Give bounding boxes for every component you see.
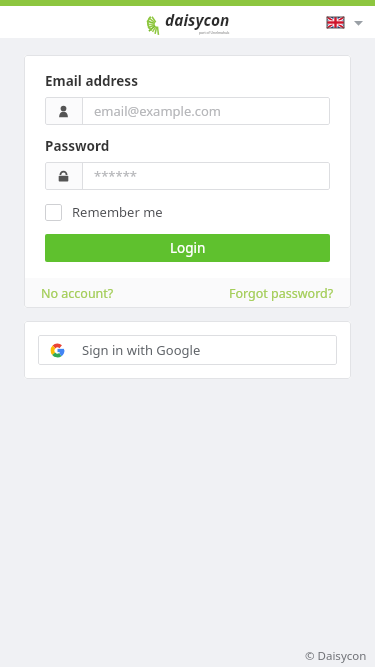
staticText: Login <box>170 239 206 257</box>
button[interactable]: ****** <box>45 162 330 190</box>
button[interactable]: email@example.com <box>45 97 330 125</box>
button[interactable]: Remember me <box>45 203 163 221</box>
button[interactable]: Login <box>45 234 330 262</box>
staticText: part of Unelmahub <box>199 30 230 35</box>
staticText: Remember me <box>72 203 163 221</box>
button[interactable]: Forgot password? <box>229 278 351 308</box>
button[interactable]: No account? <box>24 278 114 308</box>
staticText: email@example.com <box>94 102 221 120</box>
staticText: No account? <box>41 285 114 302</box>
staticText: Email address <box>45 72 138 90</box>
staticText: Sign in with Google <box>82 341 201 359</box>
button[interactable]: Select language <box>323 13 367 32</box>
staticText: ****** <box>94 167 137 185</box>
staticText: Forgot password? <box>229 285 334 302</box>
staticText: daisycon <box>165 9 230 30</box>
staticText: Password <box>45 137 110 155</box>
staticText: © Daisycon <box>305 648 367 664</box>
button[interactable]: Sign in with Google <box>38 335 337 365</box>
